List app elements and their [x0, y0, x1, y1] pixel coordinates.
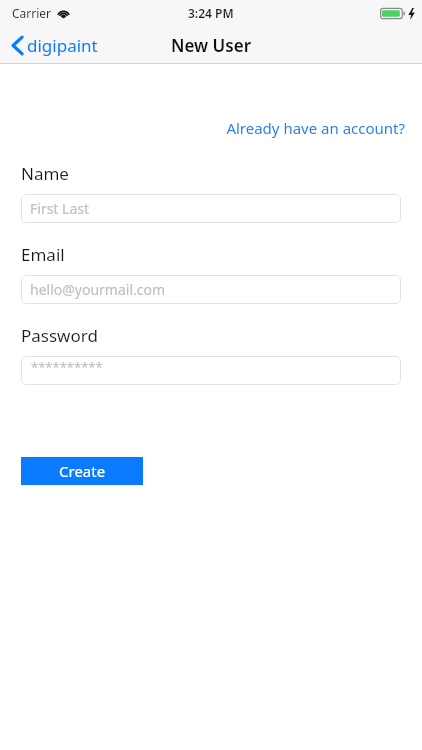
- button[interactable]: Back: [9, 30, 101, 61]
- staticText: 3:24 PM: [188, 5, 234, 21]
- staticText: hello@yourmail.com: [30, 280, 166, 299]
- staticText: Email: [21, 243, 65, 266]
- other: Back: [12, 36, 23, 55]
- staticText: digipaint: [27, 34, 98, 57]
- button[interactable]: Already have an account?: [222, 114, 409, 142]
- staticText: Carrier: [12, 5, 52, 21]
- staticText: Create: [59, 461, 106, 481]
- staticText: **********: [31, 358, 103, 376]
- button[interactable]: **********: [21, 356, 401, 385]
- button[interactable]: First Last: [21, 194, 401, 223]
- button[interactable]: hello@yourmail.com: [21, 275, 401, 304]
- button[interactable]: Create: [21, 457, 143, 485]
- staticText: New User: [171, 34, 252, 57]
- staticText: Name: [21, 162, 69, 185]
- staticText: First Last: [30, 199, 90, 218]
- staticText: Password: [21, 324, 98, 347]
